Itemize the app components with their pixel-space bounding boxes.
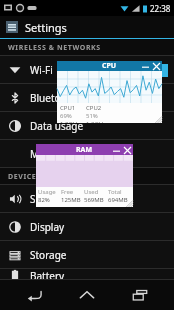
staticText: Battery (30, 269, 65, 280)
staticText: CPU2 (86, 104, 102, 112)
button[interactable]: CPU (57, 61, 162, 123)
button[interactable]: Close (152, 62, 160, 70)
staticText: Used (84, 188, 108, 196)
staticText: CPU (102, 61, 117, 71)
staticText: Bluetooth (30, 91, 77, 105)
button[interactable]: Wi-Fi (0, 56, 174, 84)
staticText: 82% (38, 196, 61, 204)
staticText: DEVICE (8, 172, 37, 182)
button[interactable]: Home (69, 280, 105, 310)
button[interactable]: Minimize (141, 62, 149, 70)
staticText: 69% (60, 112, 86, 120)
staticText: Data usage (30, 119, 84, 133)
staticText: Storage (30, 248, 67, 262)
staticText: WIRELESS & NETWORKS (8, 43, 101, 53)
button[interactable]: Back (17, 280, 53, 310)
staticText: 51% (86, 112, 98, 120)
staticText: Wi-Fi (30, 63, 53, 77)
button[interactable]: Recent apps (122, 280, 158, 310)
button[interactable]: Sound (0, 185, 174, 213)
button[interactable]: Bluetooth (0, 84, 174, 112)
button[interactable]: Settings (0, 16, 174, 38)
staticText: Usage (38, 188, 61, 196)
button[interactable]: Data usage (0, 112, 174, 140)
button[interactable]: Storage (0, 241, 174, 269)
staticText: Sound (30, 192, 61, 206)
button[interactable]: Display (0, 213, 174, 241)
staticText: ON (151, 66, 163, 76)
staticText: Display (30, 220, 65, 234)
staticText: Total (108, 188, 122, 196)
staticText: 1.2GHz (60, 120, 86, 123)
staticText: CPU1 (60, 104, 86, 112)
button[interactable]: More... (0, 140, 174, 168)
staticText: Settings (25, 20, 67, 35)
button[interactable]: RAM (36, 144, 133, 207)
staticText: 694MB (108, 196, 128, 204)
staticText: RAM (76, 145, 93, 155)
staticText: More... (30, 147, 63, 161)
button[interactable]: ON (124, 64, 168, 77)
staticText: 125MB (61, 196, 84, 204)
staticText: 22:38 (150, 3, 171, 14)
staticText: Free (61, 188, 84, 196)
staticText: 569MB (84, 196, 108, 204)
button[interactable]: Minimize (112, 146, 120, 154)
button[interactable]: Battery (0, 269, 174, 280)
button[interactable]: Close (123, 146, 131, 154)
staticText: 1.2GHz (86, 120, 107, 123)
